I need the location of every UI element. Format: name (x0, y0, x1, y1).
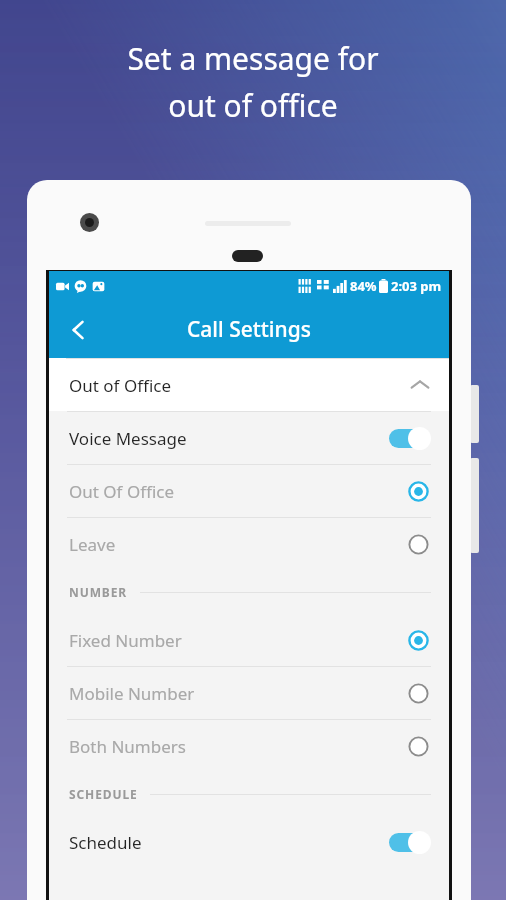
button[interactable]: Leave (49, 518, 449, 570)
staticText: Set a message for (127, 38, 379, 79)
staticText: 2:03 pm (391, 277, 442, 295)
staticText: Leave (69, 533, 116, 556)
staticText: Out Of Office (69, 480, 174, 503)
button[interactable]: Mobile Number (49, 667, 449, 719)
button[interactable]: Fixed Number (49, 614, 449, 666)
staticText: out of office (168, 85, 338, 126)
staticText: SCHEDULE (69, 786, 138, 802)
staticText: Fixed Number (69, 629, 182, 652)
staticText: Schedule (69, 831, 142, 854)
staticText: Mobile Number (69, 682, 195, 705)
button[interactable]: Schedule (49, 816, 449, 868)
staticText: Both Numbers (69, 735, 186, 758)
button[interactable]: Voice Message (49, 412, 449, 464)
staticText: Voice Message (69, 427, 187, 450)
button[interactable]: Out Of Office (49, 465, 449, 517)
button[interactable]: Out of Office (49, 359, 449, 411)
staticText: Call Settings (187, 315, 311, 344)
staticText: NUMBER (69, 584, 128, 600)
staticText: 84% (350, 277, 377, 295)
button[interactable]: Both Numbers (49, 720, 449, 772)
staticText: Out of Office (69, 374, 171, 397)
button[interactable]: Back (57, 308, 101, 352)
